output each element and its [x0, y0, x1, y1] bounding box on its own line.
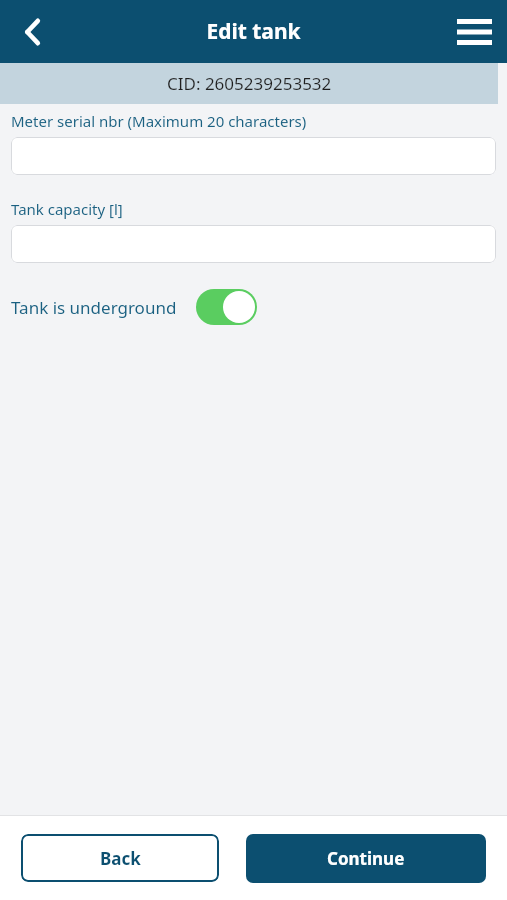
staticText: Tank is underground [11, 296, 177, 319]
staticText: Continue [327, 847, 405, 870]
staticText: Edit tank [206, 17, 301, 46]
button[interactable]: Tank is underground [0, 285, 507, 329]
staticText: Meter serial nbr (Maximum 20 characters) [11, 111, 307, 131]
button[interactable] [11, 225, 496, 263]
button[interactable]: Back [21, 834, 219, 882]
button[interactable]: Menu [448, 6, 500, 58]
button[interactable]: Continue [246, 834, 486, 883]
staticText: CID: 2605239253532 [167, 72, 332, 95]
button[interactable] [11, 137, 496, 175]
staticText: Back [100, 847, 141, 870]
staticText: Tank capacity [l] [11, 199, 123, 219]
button[interactable]: Back [9, 8, 57, 56]
button[interactable]: Tank is underground toggle [196, 289, 257, 325]
